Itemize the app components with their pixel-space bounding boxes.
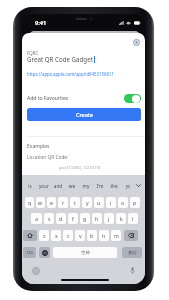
button[interactable]: e — [47, 197, 56, 208]
staticText: y — [86, 199, 89, 206]
staticText: 9:41 — [35, 19, 47, 27]
button[interactable]: Dictate — [127, 265, 138, 276]
staticText: b — [90, 232, 94, 239]
staticText: s — [48, 215, 51, 222]
button[interactable]: Change keyboard — [30, 265, 41, 276]
staticText: Great QR Code Gadget — [27, 55, 93, 63]
button[interactable]: Emoji keyboard — [39, 247, 50, 258]
staticText: Location QR Code: — [27, 154, 69, 161]
button[interactable]: Expand predictions — [134, 181, 143, 190]
staticText: geo:37.33582,-122.03118 — [59, 165, 101, 170]
staticText: d — [59, 215, 63, 222]
button[interactable]: h — [92, 213, 102, 224]
staticText: x — [55, 232, 58, 239]
staticText: v — [79, 232, 82, 239]
staticText: f — [72, 215, 74, 222]
button[interactable]: c — [63, 230, 73, 241]
button[interactable]: Create — [27, 108, 141, 121]
button[interactable]: v — [75, 230, 85, 241]
button[interactable]: n — [99, 230, 109, 241]
button[interactable]: Close — [130, 36, 143, 49]
staticText: Examples — [27, 143, 50, 150]
staticText: k — [120, 215, 123, 222]
button[interactable]: z — [39, 230, 49, 241]
button[interactable]: i — [106, 197, 116, 208]
button[interactable]: is — [23, 183, 37, 189]
staticText: 空格 — [81, 250, 90, 256]
button[interactable]: k — [116, 213, 126, 224]
staticText: h — [95, 215, 99, 222]
button[interactable]: j — [104, 213, 114, 224]
staticText: t — [74, 199, 76, 206]
button[interactable]: f — [68, 213, 78, 224]
staticText: m — [114, 232, 119, 239]
staticText: https://apps.apple.com/app/id6453156811 — [27, 71, 114, 77]
button[interactable]: and — [51, 183, 65, 189]
button[interactable]: a — [31, 213, 42, 224]
staticText: 123 — [26, 250, 33, 255]
button[interactable]: g — [80, 213, 90, 224]
button[interactable]: u — [94, 197, 104, 208]
button[interactable]: Shift — [23, 230, 37, 241]
button[interactable]: x — [51, 230, 61, 241]
staticText: o — [121, 199, 125, 206]
staticText: g — [83, 215, 87, 222]
staticText: j — [108, 215, 110, 222]
button[interactable]: 执行 — [122, 247, 142, 258]
button[interactable]: d — [56, 213, 66, 224]
button[interactable]: r — [58, 197, 68, 208]
button[interactable]: w — [36, 197, 45, 208]
button[interactable]: your — [37, 183, 51, 189]
staticText: e — [50, 199, 53, 206]
staticText: r — [62, 199, 65, 206]
staticText: u — [97, 199, 101, 206]
button[interactable]: b — [87, 230, 97, 241]
button[interactable]: p — [130, 197, 140, 208]
staticText: a — [35, 215, 38, 222]
button[interactable]: Backspace — [124, 230, 138, 241]
button[interactable]: l — [128, 213, 138, 224]
staticText: q — [28, 199, 32, 206]
button[interactable]: Add to Favourites — [27, 93, 141, 104]
button[interactable]: q — [25, 197, 34, 208]
button[interactable]: y — [82, 197, 92, 208]
button[interactable]: o — [118, 197, 128, 208]
staticText: w — [38, 199, 43, 206]
staticText: Add to Favourites — [27, 95, 124, 102]
button[interactable]: the — [107, 183, 121, 189]
button[interactable]: t — [70, 197, 80, 208]
button[interactable]: we — [65, 183, 79, 189]
staticText: 执行 — [128, 250, 137, 256]
staticText: c — [67, 232, 70, 239]
button[interactable]: 空格 — [53, 247, 117, 258]
staticText: z — [43, 232, 46, 239]
staticText: Create — [76, 111, 93, 118]
button[interactable]: 123 — [23, 247, 36, 258]
staticText: FQRC — [27, 50, 39, 56]
staticText: i — [110, 199, 112, 206]
staticText: l — [132, 215, 134, 222]
staticText: n — [102, 232, 106, 239]
button[interactable]: my — [79, 183, 93, 189]
staticText: p — [133, 199, 137, 206]
button[interactable]: yc — [121, 183, 135, 189]
button[interactable]: I'm — [93, 183, 107, 189]
button[interactable]: s — [44, 213, 54, 224]
button[interactable]: m — [111, 230, 121, 241]
